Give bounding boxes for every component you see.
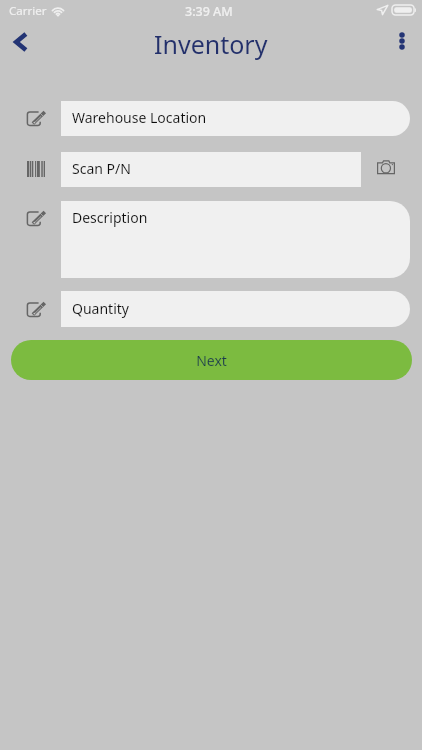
staticText: Warehouse Location xyxy=(72,108,207,127)
button[interactable]: Description xyxy=(61,201,410,278)
button[interactable]: Next xyxy=(11,340,412,380)
staticText: Description xyxy=(72,208,148,227)
staticText: Inventory xyxy=(154,27,268,61)
staticText: Quantity xyxy=(72,299,129,318)
button[interactable]: Scan barcode xyxy=(22,155,50,183)
staticText: 3:39 AM xyxy=(185,3,233,20)
button[interactable]: Take photo xyxy=(373,155,399,179)
button[interactable]: Warehouse Location xyxy=(61,101,410,136)
button[interactable]: Edit warehouse location xyxy=(22,104,50,132)
button[interactable]: Edit quantity xyxy=(22,295,50,323)
button[interactable]: Back xyxy=(2,24,38,60)
staticText: Next xyxy=(196,351,227,370)
button[interactable]: Quantity xyxy=(61,291,410,327)
button[interactable]: Scan P/N xyxy=(61,152,361,187)
staticText: Scan P/N xyxy=(72,159,131,178)
button[interactable]: More options xyxy=(384,23,420,59)
button[interactable]: Edit description xyxy=(22,204,50,232)
staticText: Carrier xyxy=(9,3,47,19)
